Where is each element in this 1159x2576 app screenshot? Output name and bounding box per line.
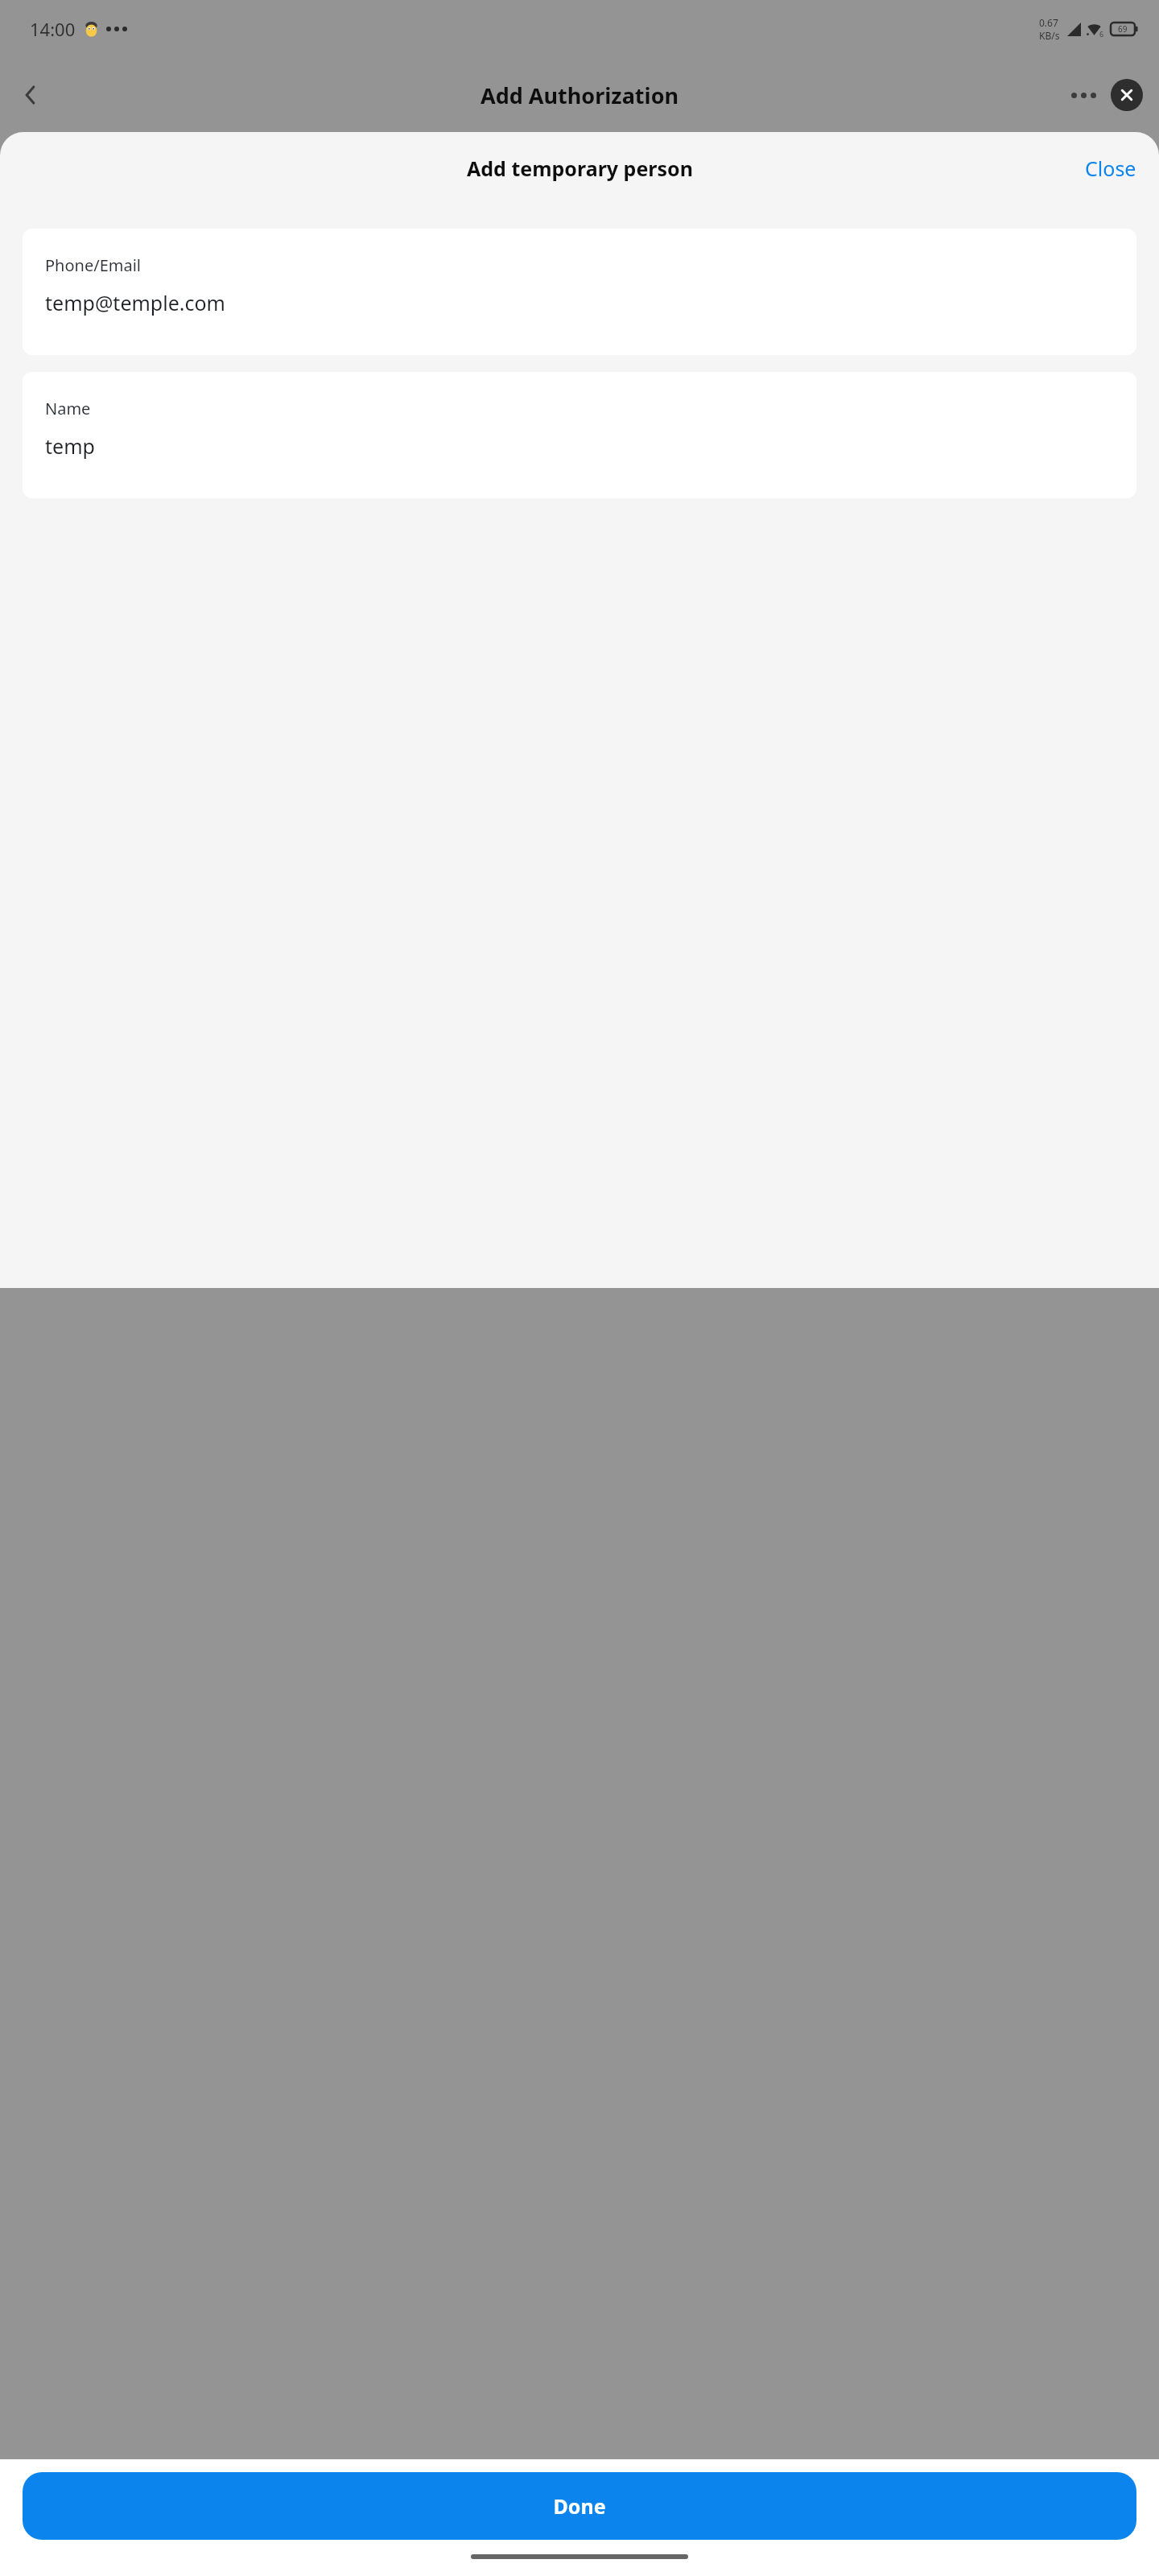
staticText: Phone/Email xyxy=(45,254,141,276)
staticText: Add temporary person xyxy=(467,155,693,182)
staticText: 6 xyxy=(1099,29,1104,39)
staticText: 69 xyxy=(1118,23,1128,35)
button[interactable]: More options xyxy=(1061,72,1106,118)
staticText: Add Authorization xyxy=(481,80,679,110)
button[interactable]: Close xyxy=(1111,79,1143,111)
button[interactable]: Close xyxy=(1074,147,1148,190)
staticText: Name xyxy=(45,398,91,419)
staticText: temp xyxy=(45,432,95,460)
staticText: temp@temple.com xyxy=(45,289,225,316)
button[interactable]: Done xyxy=(23,2472,1136,2540)
staticText: Close xyxy=(1085,155,1136,182)
staticText: 0.67 xyxy=(1039,16,1058,29)
button[interactable]: Phone/Email xyxy=(23,229,1136,355)
button[interactable]: Name xyxy=(23,372,1136,498)
staticText: 14:00 xyxy=(30,17,76,41)
staticText: KB/s xyxy=(1039,29,1060,42)
staticText: Done xyxy=(553,2492,606,2520)
button[interactable]: Back xyxy=(8,72,53,118)
